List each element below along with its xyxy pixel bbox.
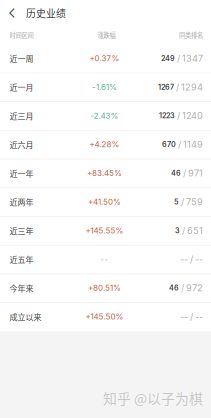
staticText: / — [183, 168, 186, 179]
staticText: / — [190, 254, 193, 265]
staticText: -1.61% — [92, 82, 117, 92]
staticText: 近六月 — [9, 139, 33, 150]
staticText: 成立以来 — [9, 311, 41, 322]
staticText: 近一月 — [9, 81, 33, 93]
staticText: / — [181, 196, 184, 207]
staticText: 1267 — [158, 83, 174, 91]
staticText: -2.43% — [90, 111, 118, 121]
staticText: 1223 — [159, 111, 175, 120]
staticText: 时间区间 — [9, 30, 33, 40]
staticText: -- — [195, 311, 203, 322]
staticText: / — [182, 225, 185, 236]
staticText: 249 — [161, 54, 175, 63]
staticText: 46 — [171, 169, 181, 177]
button[interactable]: Back — [0, 0, 24, 26]
staticText: 涨跌幅 — [97, 30, 115, 40]
staticText: +41.50% — [88, 197, 121, 207]
staticText: 1294 — [181, 81, 203, 93]
staticText: 近五年 — [9, 253, 33, 265]
staticText: / — [176, 81, 179, 93]
staticText: 近一周 — [9, 53, 33, 64]
staticText: 5 — [174, 197, 179, 206]
staticText: 1149 — [183, 139, 203, 150]
staticText: +145.55% — [85, 226, 123, 235]
staticText: / — [177, 110, 180, 121]
staticText: 知乎 @以子为棋 — [103, 388, 203, 408]
staticText: 近三月 — [9, 110, 33, 122]
staticText: +80.51% — [88, 283, 121, 293]
staticText: / — [178, 139, 181, 150]
staticText: 同类排名 — [179, 30, 203, 40]
staticText: 今年来 — [9, 282, 33, 294]
staticText: -- — [180, 311, 188, 322]
staticText: / — [177, 53, 180, 64]
staticText: 1240 — [182, 110, 203, 121]
staticText: / — [190, 311, 193, 322]
staticText: 历史业绩 — [26, 6, 66, 20]
staticText: +4.28% — [89, 140, 119, 149]
staticText: +145.50% — [85, 312, 123, 321]
staticText: 近两年 — [9, 196, 33, 208]
staticText: 972 — [186, 282, 203, 293]
staticText: +0.37% — [89, 53, 119, 63]
staticText: +83.45% — [87, 168, 122, 178]
staticText: 971 — [188, 168, 203, 179]
staticText: 近一年 — [9, 167, 33, 179]
staticText: 651 — [187, 225, 203, 236]
staticText: / — [181, 282, 184, 293]
staticText: -- — [195, 254, 203, 265]
staticText: 近三年 — [9, 225, 33, 236]
staticText: 3 — [175, 226, 180, 235]
staticText: 46 — [169, 284, 179, 292]
staticText: 759 — [186, 196, 203, 207]
staticText: -- — [100, 254, 108, 264]
staticText: -- — [180, 254, 188, 265]
staticText: 670 — [162, 140, 176, 149]
staticText: 1347 — [182, 53, 203, 64]
